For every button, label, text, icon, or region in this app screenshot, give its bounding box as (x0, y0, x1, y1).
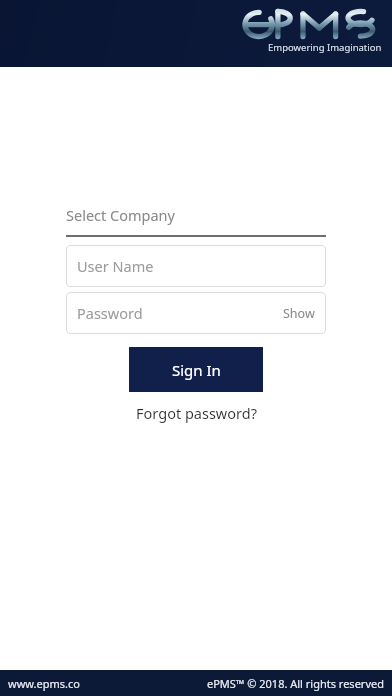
staticText: ePMS™ © 2018. All rights reserved (207, 676, 384, 691)
staticText: www.epms.co (8, 676, 80, 691)
staticText: Select Company (66, 205, 175, 225)
button[interactable]: Password (66, 292, 326, 334)
button[interactable]: Forgot password? (132, 399, 261, 427)
other: ePMS logo (240, 6, 382, 40)
staticText: Password (77, 303, 143, 323)
staticText: User Name (77, 256, 154, 276)
button[interactable]: Select Company (66, 205, 326, 237)
staticText: Forgot password? (136, 403, 257, 423)
button[interactable]: Sign In (129, 347, 263, 392)
staticText: Empowering Imagination (268, 41, 382, 54)
button[interactable]: User Name (66, 245, 326, 287)
staticText: Show (283, 305, 315, 322)
staticText: Sign In (172, 360, 221, 380)
button[interactable]: Show (283, 305, 315, 322)
button[interactable]: www.epms.co (8, 676, 80, 691)
